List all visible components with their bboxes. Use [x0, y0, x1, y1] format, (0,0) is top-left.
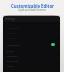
staticText: About: [7, 64, 14, 67]
staticText: Font size: [7, 36, 17, 39]
button[interactable]: Shortcuts: [5, 58, 58, 63]
button[interactable]: Dark mode: [3, 40, 60, 48]
button[interactable]: Keyboard: [5, 53, 58, 58]
staticText: Settings: [5, 17, 15, 21]
staticText: Editor: [7, 49, 14, 52]
staticText: Light and dark themes: [18, 8, 46, 12]
staticText: Keyboard: [7, 54, 18, 57]
staticText: Shortcuts: [7, 59, 18, 62]
other: Dark mode toggle: [51, 43, 55, 46]
button[interactable]: Settings: [3, 16, 60, 22]
staticText: Theme: [7, 31, 15, 34]
staticText: Appearance: [7, 26, 21, 29]
staticText: Dark mode: [7, 43, 20, 46]
staticText: Customizable Editor: [11, 3, 54, 9]
